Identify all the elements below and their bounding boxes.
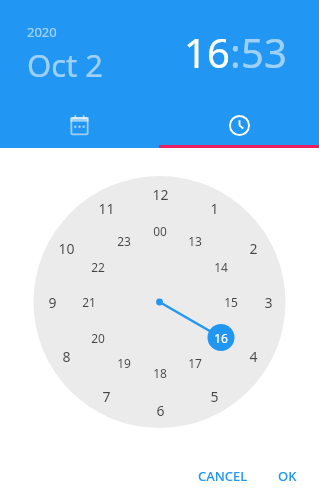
- staticText: 16: [214, 330, 228, 346]
- button[interactable]: Select time: [159, 102, 319, 148]
- button[interactable]: 12: [145, 184, 175, 204]
- staticText: CANCEL: [198, 467, 248, 485]
- button[interactable]: 22: [83, 257, 113, 277]
- button[interactable]: 16: [206, 328, 236, 348]
- button[interactable]: 19: [109, 353, 139, 373]
- staticText: 7: [102, 387, 111, 406]
- button[interactable]: 8: [51, 346, 81, 366]
- staticText: 17: [188, 355, 202, 371]
- staticText: :: [230, 25, 241, 79]
- staticText: OK: [278, 467, 297, 485]
- staticText: 12: [152, 185, 169, 204]
- button[interactable]: 5: [199, 386, 229, 406]
- button[interactable]: 18: [145, 363, 175, 383]
- button[interactable]: OK: [270, 460, 305, 492]
- staticText: 1: [210, 199, 219, 218]
- staticText: 00: [153, 223, 167, 239]
- button[interactable]: 53: [241, 25, 287, 79]
- staticText: 2: [249, 239, 258, 258]
- button[interactable]: 23: [109, 231, 139, 251]
- staticText: 13: [188, 233, 202, 249]
- staticText: 21: [82, 294, 96, 310]
- staticText: 9: [48, 293, 57, 312]
- staticText: 2020: [27, 23, 57, 41]
- staticText: 23: [117, 233, 131, 249]
- staticText: Oct 2: [27, 44, 104, 86]
- button[interactable]: 3: [253, 292, 283, 312]
- button[interactable]: 9: [37, 292, 67, 312]
- staticText: 15: [224, 294, 238, 310]
- button[interactable]: 16: [184, 25, 230, 79]
- button[interactable]: 2: [238, 238, 268, 258]
- button[interactable]: 10: [51, 238, 81, 258]
- staticText: 4: [249, 347, 258, 366]
- button[interactable]: 2020: [27, 23, 104, 86]
- button[interactable]: 7: [91, 386, 121, 406]
- button[interactable]: 21: [74, 292, 104, 312]
- button[interactable]: 00: [145, 221, 175, 241]
- staticText: 11: [98, 199, 115, 218]
- staticText: 20: [91, 330, 105, 346]
- staticText: 5: [210, 387, 219, 406]
- staticText: 19: [117, 355, 131, 371]
- staticText: 10: [58, 239, 75, 258]
- button[interactable]: Select date: [0, 102, 159, 148]
- staticText: 6: [156, 401, 165, 420]
- button[interactable]: 15: [216, 292, 246, 312]
- staticText: 22: [91, 259, 105, 275]
- staticText: 14: [214, 259, 228, 275]
- button[interactable]: 1: [199, 198, 229, 218]
- button[interactable]: 20: [83, 328, 113, 348]
- staticText: 8: [62, 347, 71, 366]
- button[interactable]: 6: [145, 400, 175, 420]
- button[interactable]: CANCEL: [190, 460, 256, 492]
- button[interactable]: 4: [238, 346, 268, 366]
- button[interactable]: 17: [180, 353, 210, 373]
- button[interactable]: 11: [91, 198, 121, 218]
- button[interactable]: 14: [206, 257, 236, 277]
- button[interactable]: 13: [180, 231, 210, 251]
- staticText: 18: [153, 365, 167, 381]
- staticText: 3: [264, 293, 273, 312]
